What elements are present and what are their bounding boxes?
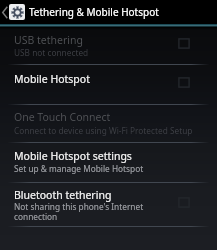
button[interactable]: Navigate up bbox=[0, 0, 217, 24]
staticText: USB tethering bbox=[14, 33, 83, 47]
button[interactable]: Toggle Mobile Hotspot bbox=[178, 77, 190, 88]
staticText: Set up & manage Mobile Hotspot bbox=[14, 163, 144, 174]
button[interactable]: Bluetooth tethering bbox=[0, 183, 217, 226]
button[interactable]: Mobile Hotspot settings bbox=[0, 143, 217, 182]
button[interactable]: USB tethering bbox=[0, 27, 217, 64]
staticText: One Touch Connect bbox=[14, 110, 111, 124]
staticText: Mobile Hotspot settings bbox=[14, 149, 132, 163]
staticText: Connect to device using Wi-Fi Protected … bbox=[14, 125, 193, 136]
button[interactable]: Mobile Hotspot bbox=[0, 65, 217, 104]
staticText: USB not connected bbox=[14, 47, 89, 58]
button[interactable]: Toggle Bluetooth tethering bbox=[178, 197, 190, 208]
button[interactable]: Toggle USB tethering bbox=[178, 38, 190, 49]
staticText: Bluetooth tethering bbox=[14, 188, 112, 202]
staticText: Mobile Hotspot bbox=[14, 72, 90, 86]
staticText: Not sharing this phone's Internet connec… bbox=[14, 201, 179, 222]
button[interactable]: One Touch Connect bbox=[0, 105, 217, 142]
staticText: Tethering & Mobile Hotspot bbox=[29, 5, 159, 19]
